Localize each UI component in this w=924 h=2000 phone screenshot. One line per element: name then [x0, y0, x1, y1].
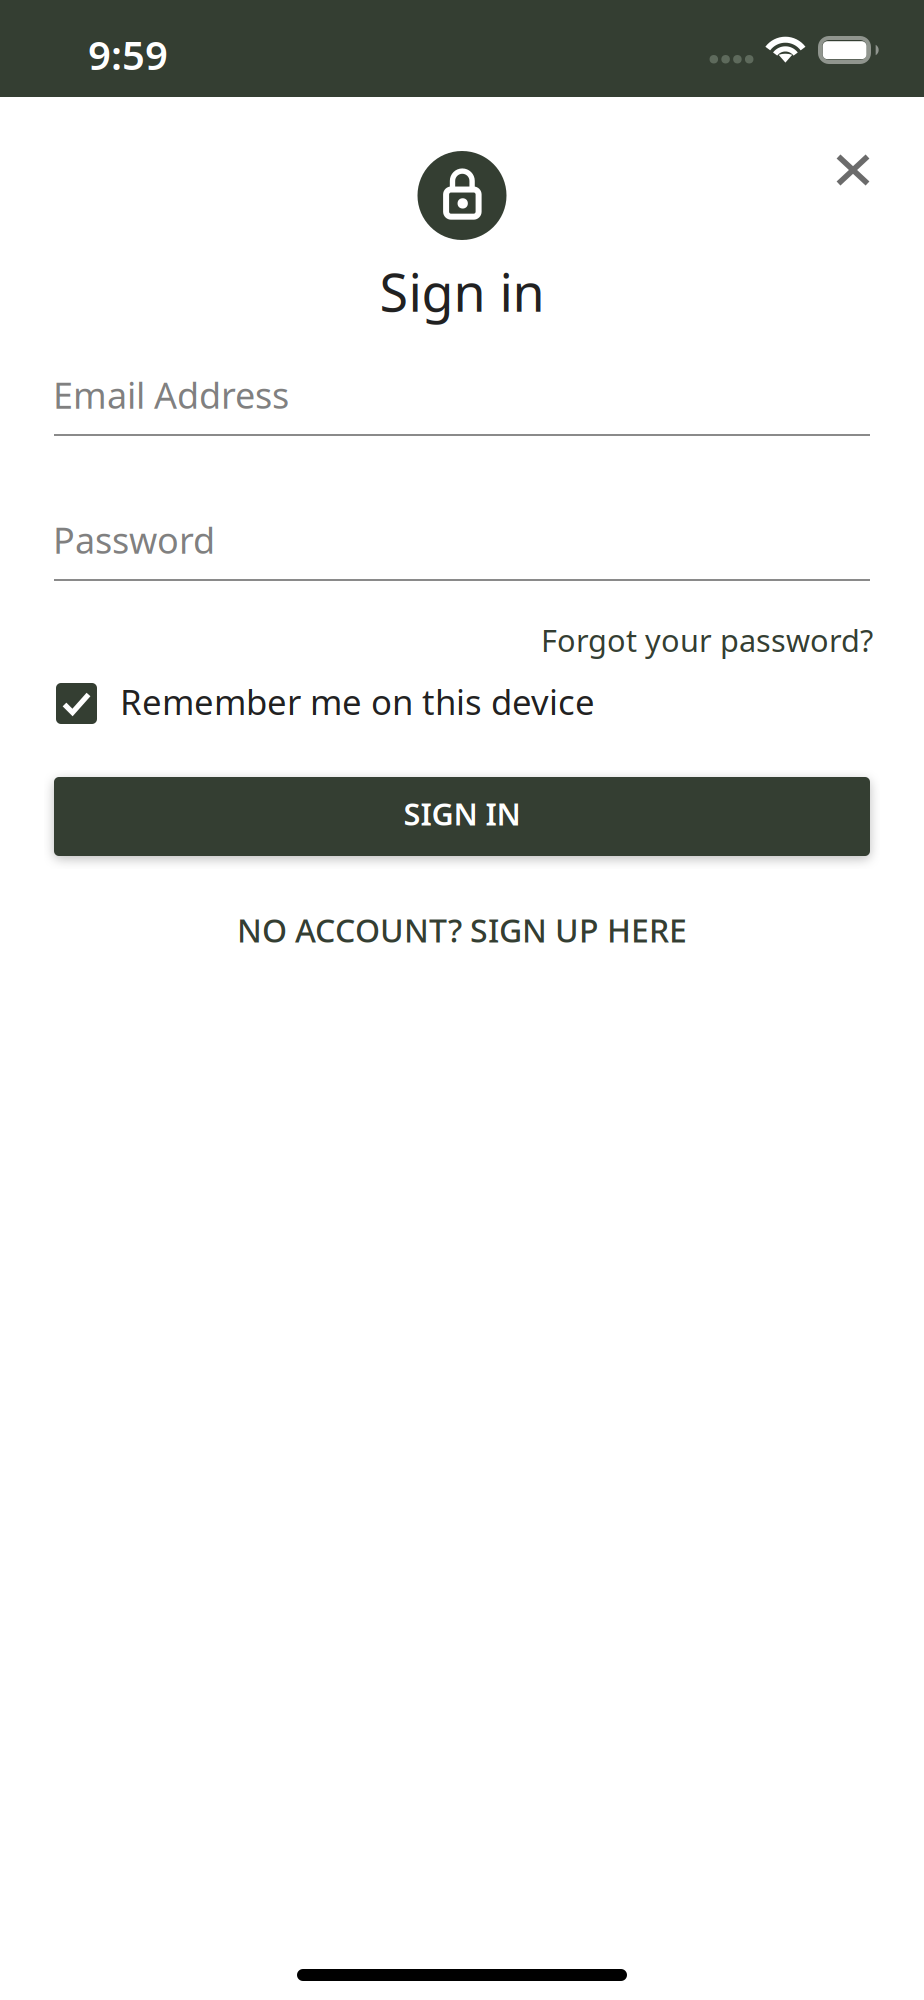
staticText: Forgot your password?	[541, 620, 873, 660]
staticText: Sign in	[379, 257, 544, 326]
button[interactable]: Remember me on this device	[56, 683, 872, 724]
staticText: 9:59	[88, 28, 168, 81]
staticText: SIGN IN	[403, 793, 520, 834]
button[interactable]: NO ACCOUNT? SIGN UP HERE	[54, 910, 870, 950]
button[interactable]: Close	[815, 133, 891, 207]
button[interactable]: Forgot your password?	[54, 617, 873, 663]
staticText: Password	[53, 516, 215, 564]
staticText: NO ACCOUNT? SIGN UP HERE	[237, 909, 687, 951]
staticText: Remember me on this device	[120, 678, 595, 724]
button[interactable]: SIGN IN	[54, 777, 870, 856]
staticText: Email Address	[53, 371, 289, 419]
